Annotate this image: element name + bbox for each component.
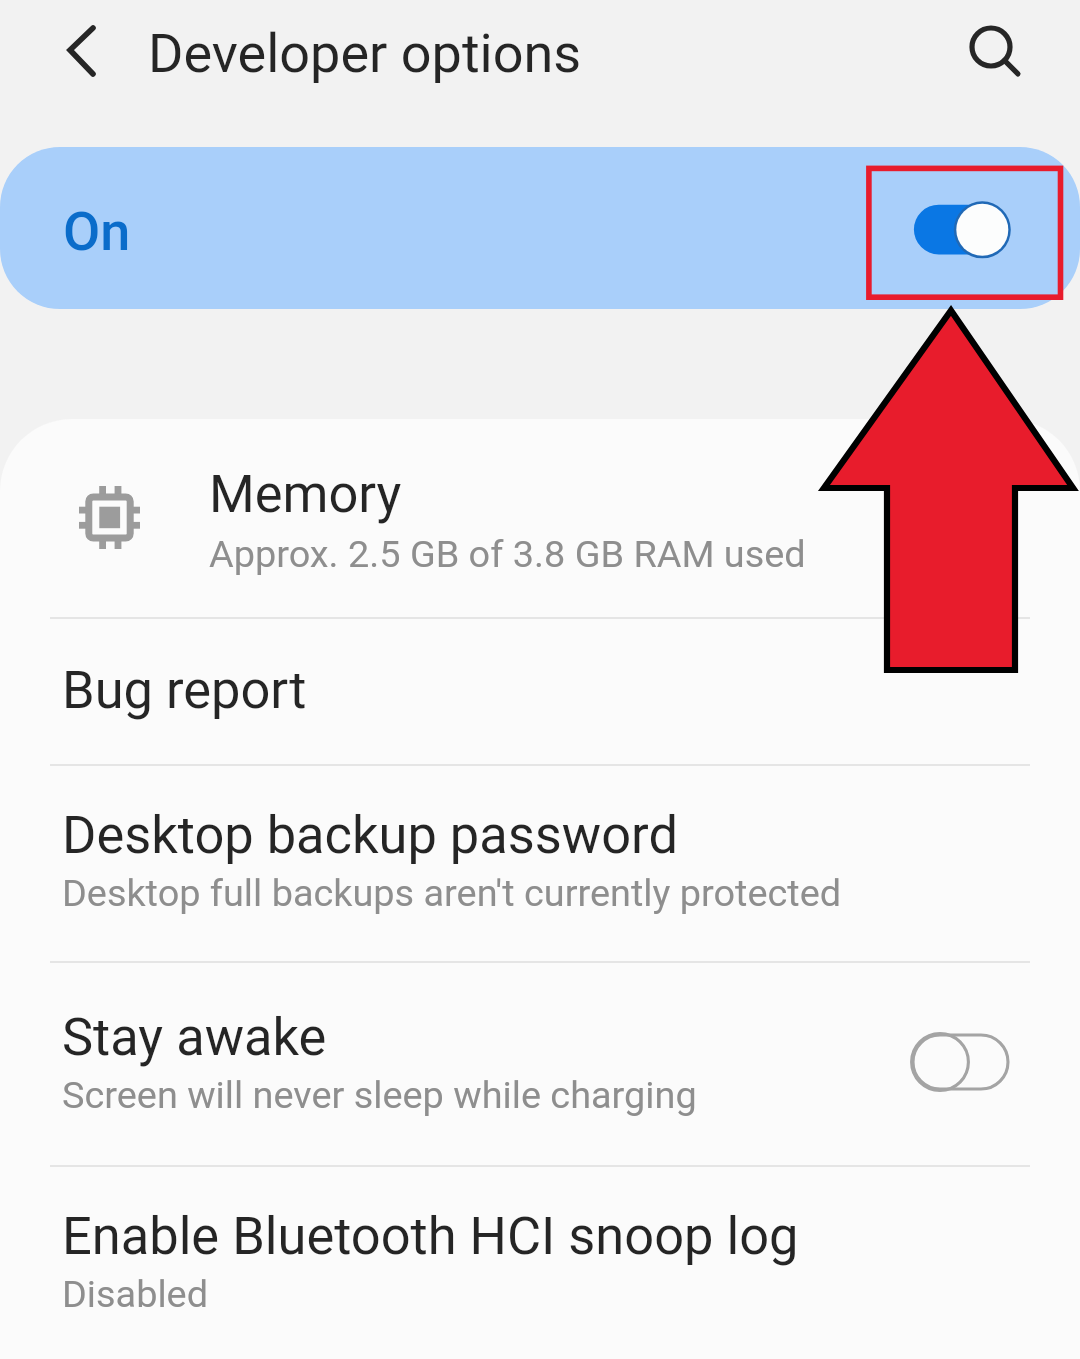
staticText: Approx. 2.5 GB of 3.8 GB RAM used: [209, 532, 806, 576]
button[interactable]: Desktop backup password: [0, 764, 1080, 961]
button[interactable]: On: [0, 147, 1080, 309]
staticText: Developer options: [148, 22, 582, 85]
staticText: Disabled: [62, 1272, 209, 1316]
staticText: Stay awake: [62, 1006, 327, 1067]
staticText: Screen will never sleep while charging: [62, 1073, 697, 1117]
button[interactable]: Developer options on: [910, 198, 1012, 262]
staticText: Memory: [209, 463, 402, 524]
staticText: Desktop backup password: [62, 804, 678, 865]
button[interactable]: Enable Bluetooth HCI snoop log: [0, 1165, 1080, 1359]
button[interactable]: Navigate up: [36, 10, 116, 90]
staticText: On: [63, 200, 131, 263]
staticText: Bug report: [62, 659, 307, 720]
staticText: Desktop full backups aren't currently pr…: [62, 871, 842, 915]
button[interactable]: Memory: [0, 419, 1080, 617]
button[interactable]: Bug report: [0, 617, 1080, 764]
button[interactable]: Search: [951, 7, 1031, 87]
staticText: Enable Bluetooth HCI snoop log: [62, 1205, 799, 1266]
button[interactable]: Stay awake off: [908, 1031, 1012, 1093]
button[interactable]: Stay awake: [0, 961, 1080, 1165]
